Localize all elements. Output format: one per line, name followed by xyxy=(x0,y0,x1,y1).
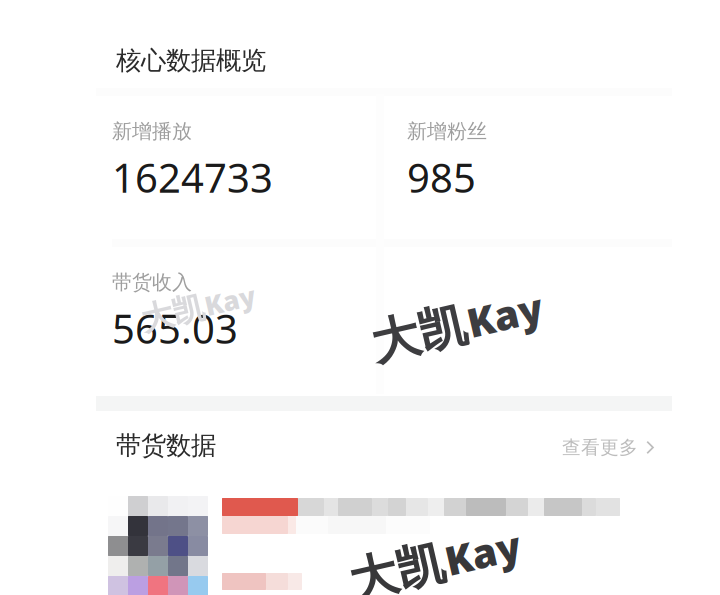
staticText: 1624733 xyxy=(112,151,273,204)
staticText: 大凯 xyxy=(140,288,204,327)
button[interactable]: 查看更多 xyxy=(556,430,661,465)
button[interactable]: 新增播放 xyxy=(112,119,362,223)
staticText: 新增粉丝 xyxy=(407,119,487,144)
staticText: 查看更多 xyxy=(562,436,638,459)
staticText: 带货数据 xyxy=(116,430,216,461)
button[interactable]: 新增粉丝 xyxy=(407,119,657,223)
staticText: 565.03 xyxy=(112,302,238,355)
staticText: 大凯 xyxy=(348,534,444,593)
staticText: 大凯 xyxy=(370,296,466,355)
button[interactable]: Product xyxy=(108,496,664,595)
staticText: 985 xyxy=(407,151,476,204)
staticText: 带货收入 xyxy=(112,270,192,295)
staticText: Kay xyxy=(205,290,256,325)
button[interactable]: 带货收入 xyxy=(112,270,362,374)
staticText: 新增播放 xyxy=(112,119,192,144)
staticText: 核心数据概览 xyxy=(116,45,266,76)
staticText: Kay xyxy=(468,299,544,352)
staticText: Kay xyxy=(446,537,522,590)
